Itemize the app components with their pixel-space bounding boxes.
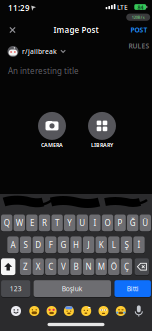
button[interactable]: Delete [135,258,149,275]
staticText: B [73,261,78,272]
button[interactable]: Ğ [127,214,138,231]
staticText: D [35,239,41,250]
button[interactable]: H [70,236,82,253]
button[interactable]: POST [130,26,147,34]
staticText: V [61,261,66,272]
button[interactable]: Z [20,258,31,275]
staticText: X [36,261,41,272]
button[interactable]: W [14,214,25,231]
button[interactable]: RULES [128,42,149,50]
button[interactable]: V [58,258,69,275]
button[interactable]: O [102,214,113,231]
button[interactable]: U [77,214,88,231]
staticText: L [112,239,116,250]
staticText: POST [130,26,147,34]
button[interactable]: E [26,214,38,231]
staticText: LIBRARY [91,141,113,148]
staticText: J [88,239,90,250]
staticText: R [42,218,47,228]
staticText: O [104,218,110,228]
button[interactable]: Library [88,112,116,148]
staticText: E [30,218,34,228]
button[interactable]: Q [1,214,12,231]
staticText: Ü [142,218,148,228]
staticText: N [86,261,92,272]
staticText: Ç [124,261,129,272]
staticText: Ğ [130,218,136,228]
staticText: İ [137,239,140,250]
button[interactable]: Boşluk [34,280,111,297]
staticText: Q [4,218,10,228]
button[interactable]: A [7,236,19,253]
button[interactable]: An interesting title [0,63,152,79]
staticText: C [48,261,53,272]
staticText: Ş [124,239,128,250]
button[interactable]: J [83,236,94,253]
button[interactable]: Ö [108,258,119,275]
button[interactable]: D [32,236,44,253]
button[interactable]: C [45,258,56,275]
staticText: RULES [128,42,149,50]
staticText: Image Post [53,25,98,35]
button[interactable]: İ [133,236,145,253]
button[interactable]: L [108,236,119,253]
staticText: I [93,218,96,228]
button[interactable]: X [32,258,44,275]
button[interactable]: Close [4,23,20,37]
button[interactable]: B [70,258,82,275]
staticText: 120B/s [132,14,145,20]
button[interactable]: Ü [140,214,151,231]
button[interactable]: M [95,258,107,275]
button[interactable]: Emoji suggestion [98,306,108,316]
button[interactable]: Emoji keyboard [10,305,21,316]
staticText: G [60,239,66,250]
button[interactable]: Emoji suggestion [64,306,74,316]
staticText: U [79,218,85,228]
staticText: P [118,218,123,228]
staticText: 84 [137,4,143,11]
staticText: S [24,239,28,250]
staticText: 123 [10,284,22,293]
button[interactable]: Ş [121,236,132,253]
button[interactable]: K [95,236,107,253]
button[interactable]: Network speed [126,14,150,21]
button[interactable]: F [45,236,56,253]
staticText: 11:29 [8,3,30,13]
staticText: Y [67,218,72,228]
staticText: LTE [117,3,128,12]
staticText: W [16,218,23,228]
button[interactable]: N [83,258,94,275]
button[interactable]: P [114,214,126,231]
button[interactable]: Shift [1,258,15,275]
button[interactable]: r/jailbreak [0,46,66,57]
button[interactable]: Emoji suggestion [29,306,39,316]
staticText: H [73,239,79,250]
button[interactable]: G [58,236,69,253]
button[interactable]: Dictation [134,304,144,316]
staticText: CAMERA [41,141,63,148]
staticText: M [98,261,105,272]
staticText: r/jailbreak [22,47,57,56]
button[interactable]: Y [64,214,75,231]
staticText: Boşluk [62,284,83,293]
button[interactable]: Camera [38,112,66,148]
button[interactable]: Ç [121,258,132,275]
button[interactable]: S [20,236,31,253]
staticText: F [49,239,53,250]
button[interactable]: Bitti [114,280,151,297]
staticText: A [10,239,15,250]
staticText: Bitti [127,284,139,293]
button[interactable]: Emoji suggestion [116,306,126,316]
staticText: Ö [111,261,117,272]
button[interactable]: Emoji suggestion [47,306,57,316]
button[interactable]: I [89,214,101,231]
button[interactable]: R [39,214,50,231]
staticText: K [99,239,104,250]
button[interactable]: T [51,214,63,231]
button[interactable]: 123 [1,280,30,297]
staticText: Z [23,261,28,272]
staticText: T [55,218,59,228]
staticText: An interesting title [8,66,79,76]
button[interactable]: Emoji suggestion [81,306,91,316]
